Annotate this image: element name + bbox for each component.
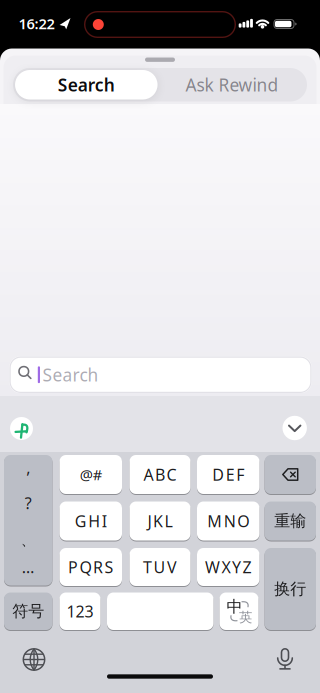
staticText: # (93, 465, 102, 484)
staticText: C (166, 464, 176, 485)
button[interactable]: T (129, 548, 190, 586)
staticText: 3 (84, 601, 93, 622)
staticText: 英 (239, 609, 252, 625)
staticText: 重 (274, 511, 290, 531)
button[interactable]: 符 (4, 592, 52, 630)
staticText: I (102, 510, 107, 532)
staticText: Search (58, 73, 115, 96)
staticText: , (26, 457, 30, 478)
button[interactable]: D (197, 455, 259, 494)
staticText: J (147, 510, 151, 532)
button[interactable]: W (197, 548, 259, 586)
staticText: ? (25, 492, 32, 514)
staticText: E (226, 464, 235, 485)
button[interactable] (10, 417, 33, 440)
button[interactable]: 重 (264, 501, 316, 540)
button[interactable]: @ (59, 455, 122, 494)
staticText: Ask Rewind (185, 73, 278, 96)
button[interactable]: 1 (59, 592, 100, 630)
staticText: X (221, 556, 230, 578)
staticText: G (75, 510, 87, 532)
button[interactable]: A (129, 455, 190, 494)
staticText: Y (232, 556, 241, 578)
staticText: D (212, 464, 224, 485)
button[interactable]: Ask Rewind (162, 70, 302, 99)
staticText: F (236, 464, 244, 485)
staticText: N (224, 510, 236, 532)
staticText: 1 (66, 601, 75, 622)
staticText: @ (80, 465, 93, 484)
staticText: T (143, 556, 152, 578)
staticText: 2 (75, 601, 84, 622)
staticText: 符 (12, 601, 28, 621)
staticText: W (205, 556, 220, 578)
staticText: S (104, 556, 113, 578)
staticText: K (153, 510, 163, 532)
staticText: L (164, 510, 172, 532)
button[interactable] (282, 416, 307, 440)
staticText: P (68, 556, 78, 578)
staticText: Q (79, 556, 91, 578)
button[interactable]: 中 (219, 592, 258, 630)
staticText: 换行 (274, 579, 306, 599)
button[interactable]: G (59, 501, 122, 540)
staticText: V (167, 556, 177, 578)
staticText: Z (242, 556, 251, 578)
staticText: Search (42, 363, 98, 386)
staticText: B (155, 464, 165, 485)
button[interactable]: 换行 (264, 548, 316, 630)
staticText: U (153, 556, 165, 578)
button[interactable] (107, 592, 213, 630)
staticText: 、 (21, 531, 36, 549)
staticText: M (207, 510, 222, 532)
staticText: 号 (28, 601, 44, 621)
staticText: H (88, 510, 100, 532)
staticText: A (143, 464, 153, 485)
staticText: 中 (226, 597, 242, 617)
staticText: R (93, 556, 103, 578)
button[interactable]: Search (9, 356, 311, 393)
button[interactable]: M (197, 501, 259, 540)
button[interactable] (274, 647, 296, 671)
button[interactable] (264, 455, 316, 494)
staticText: 输 (290, 511, 306, 531)
staticText: 16:22 (18, 14, 54, 33)
button[interactable]: , (4, 455, 52, 585)
staticText: … (22, 556, 35, 578)
button[interactable]: Search (15, 70, 157, 99)
staticText: O (237, 510, 249, 532)
button[interactable] (22, 647, 46, 671)
button[interactable]: J (129, 501, 190, 540)
button[interactable]: P (59, 548, 122, 586)
